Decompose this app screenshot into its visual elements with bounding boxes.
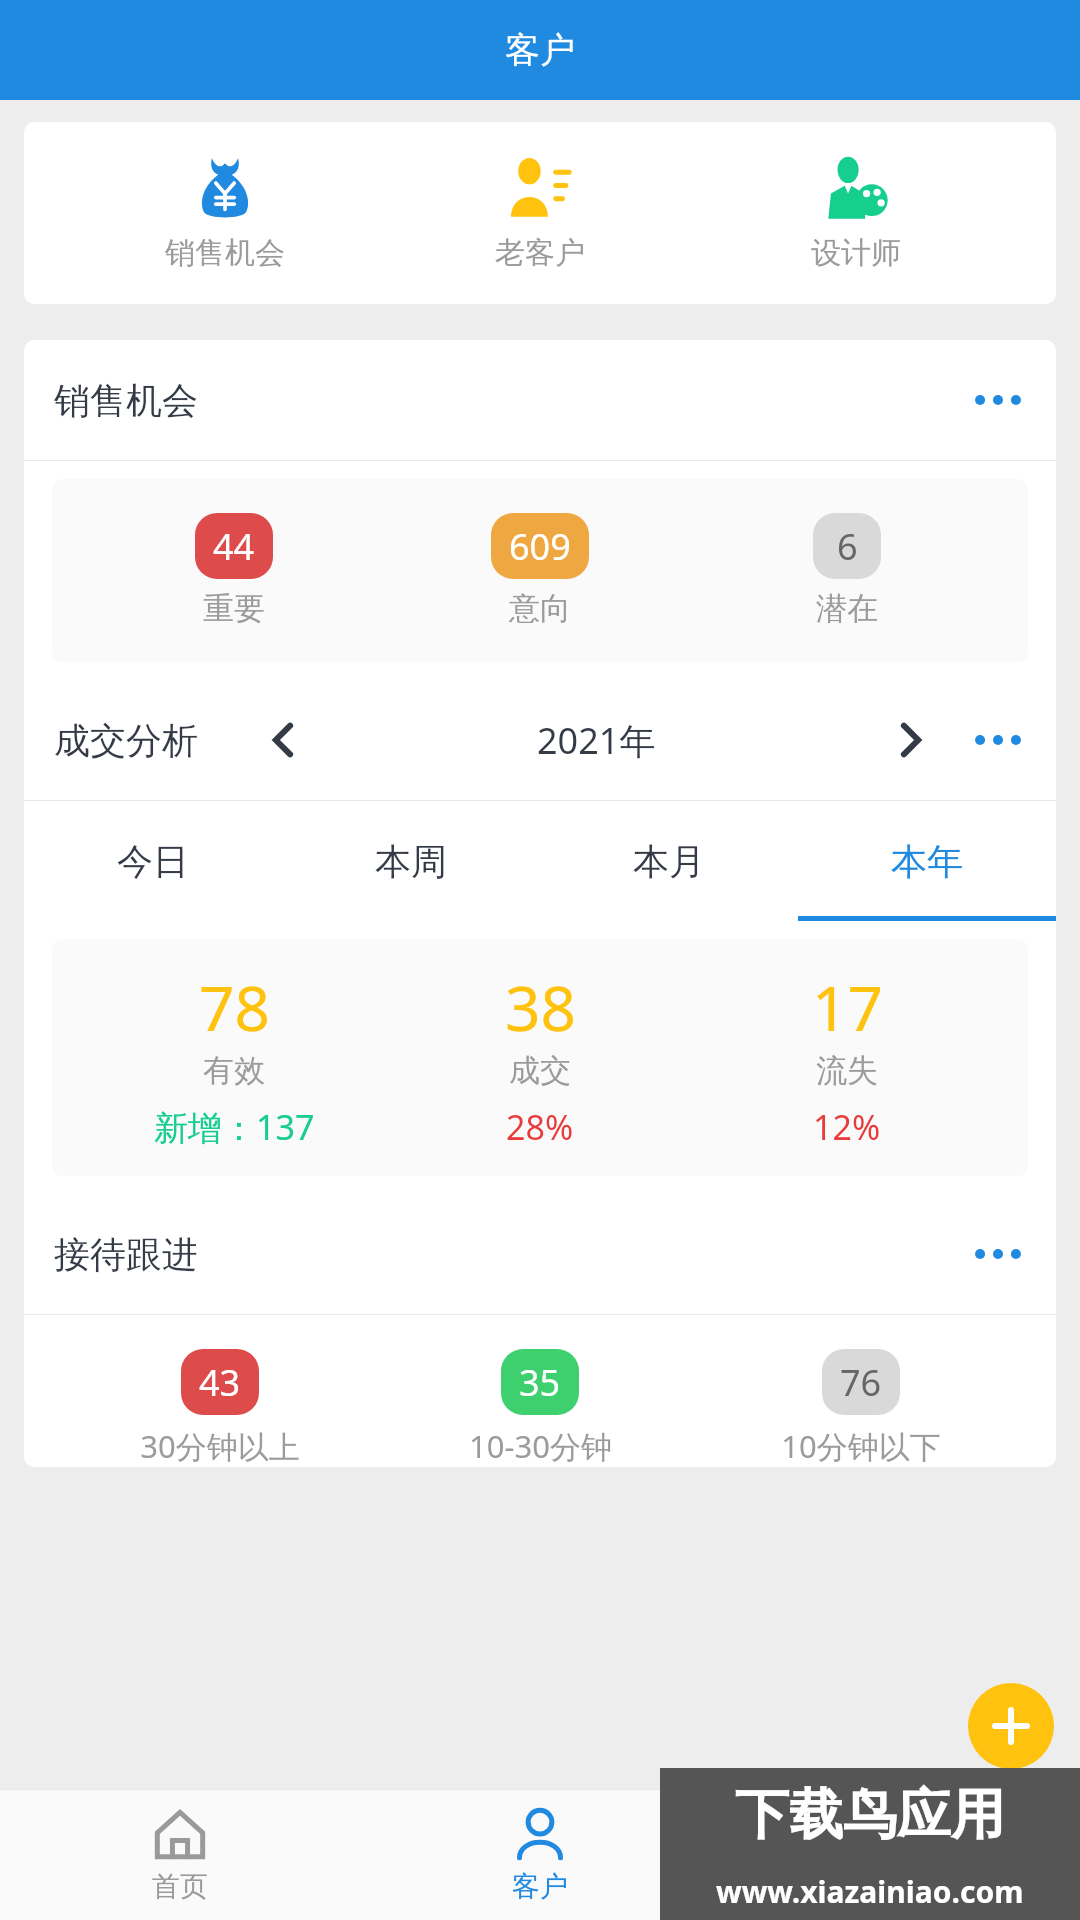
other: More [970,390,1026,410]
button[interactable]: 客户 [360,1790,720,1920]
button[interactable]: 老客户 [425,150,655,276]
button[interactable]: 本年 [798,801,1056,921]
button[interactable]: Add [968,1683,1054,1769]
staticText: 35 [519,1358,561,1407]
staticText: 销售机会 [165,234,285,272]
staticText: 成交 [509,1051,571,1090]
staticText: 接待跟进 [54,1232,198,1277]
button[interactable]: 今日 [24,801,282,921]
staticText: 6 [837,522,858,571]
staticText: 78 [199,965,270,1049]
staticText: 2021年 [537,716,656,765]
button[interactable]: 首页 [0,1790,360,1920]
button[interactable]: 43 [95,1349,345,1467]
staticText: 10分钟以下 [781,1425,941,1467]
button[interactable]: Previous year [254,710,314,770]
staticText: 38 [505,965,576,1049]
staticText: 17 [812,965,883,1049]
button[interactable]: 设计师 [741,150,971,276]
staticText: 潜在 [816,589,878,628]
staticText: 10-30分钟 [469,1425,612,1467]
staticText: 下载鸟应用 [735,1781,1005,1849]
button[interactable]: 17 [722,965,972,1150]
button[interactable]: 44 [109,513,359,628]
button[interactable]: 工作 [720,1790,1080,1920]
button[interactable]: 38 [415,965,665,1150]
button[interactable]: 609 [415,513,665,628]
staticText: 12% [813,1104,881,1150]
staticText: 本周 [375,839,447,884]
staticText: 客户 [512,1869,568,1904]
staticText: 76 [840,1358,882,1407]
button[interactable]: 销售机会 [24,340,1056,460]
staticText: 44 [213,522,255,571]
other: More [970,730,1026,750]
button[interactable]: 本周 [282,801,540,921]
staticText: 流失 [816,1051,878,1090]
staticText: 30分钟以上 [140,1425,300,1467]
staticText: www.xiazainiao.com [716,1871,1024,1912]
staticText: 本月 [633,839,705,884]
staticText: 43 [199,1358,241,1407]
staticText: 首页 [152,1869,208,1904]
staticText: 客户 [505,28,575,72]
other: More [970,1244,1026,1264]
staticText: 意向 [509,589,571,628]
button[interactable]: Next year [880,710,940,770]
staticText: 28% [506,1104,574,1150]
button[interactable]: 35 [415,1349,665,1467]
staticText: 老客户 [495,234,585,272]
button[interactable]: 销售机会 [110,150,340,276]
button[interactable]: 78 [109,965,359,1150]
button[interactable]: 接待跟进 [24,1194,1056,1314]
staticText: 今日 [117,839,189,884]
staticText: 有效 [203,1051,265,1090]
staticText: 成交分析 [54,718,198,763]
button[interactable]: 76 [736,1349,986,1467]
staticText: 新增：137 [154,1104,315,1150]
staticText: 设计师 [811,234,901,272]
button[interactable]: 6 [722,513,972,628]
staticText: 重要 [203,589,265,628]
staticText: 销售机会 [54,378,198,423]
staticText: 609 [509,522,571,571]
staticText: 工作 [872,1869,928,1904]
staticText: 本年 [891,839,963,884]
button[interactable]: 本月 [540,801,798,921]
